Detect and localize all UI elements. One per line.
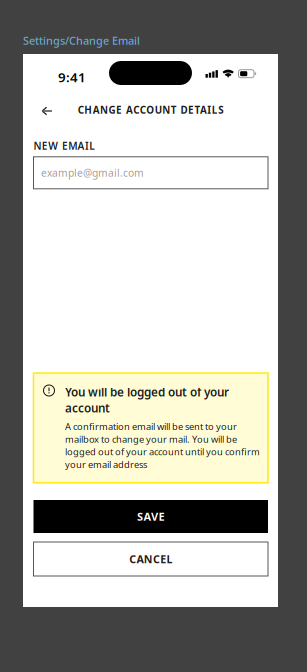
button[interactable]: Back bbox=[31, 100, 63, 122]
button[interactable]: SAVE bbox=[33, 500, 268, 533]
staticText: A confirmation email will be sent to you… bbox=[65, 420, 260, 471]
staticText: You will be logged out of your account bbox=[65, 384, 229, 416]
staticText: NEW EMAIL bbox=[33, 139, 95, 153]
staticText: 9:41 bbox=[58, 68, 86, 86]
staticText: CANCEL bbox=[129, 552, 172, 566]
staticText: SAVE bbox=[137, 509, 164, 524]
button[interactable]: CANCEL bbox=[33, 542, 268, 576]
staticText: CHANGE ACCOUNT DETAILS bbox=[78, 103, 223, 117]
staticText: Settings/Change Email bbox=[23, 33, 140, 48]
staticText: example@gmail.com bbox=[41, 166, 144, 180]
